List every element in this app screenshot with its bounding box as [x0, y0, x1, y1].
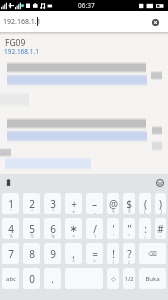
staticText: ³ — [52, 208, 54, 214]
staticText: > — [93, 258, 96, 264]
button[interactable]: ! — [107, 243, 119, 264]
button[interactable]: Clear — [148, 15, 162, 29]
staticText: “ — [128, 233, 130, 239]
staticText: $ — [126, 197, 132, 211]
button[interactable]: ⌫ — [139, 243, 166, 264]
staticText: Buka — [145, 275, 160, 283]
staticText: ; — [144, 233, 146, 239]
staticText: 8 — [29, 247, 35, 261]
staticText: ¹ — [10, 208, 12, 214]
staticText: ) — [159, 197, 162, 211]
button[interactable]: 3 — [44, 193, 61, 214]
button[interactable]: $ — [123, 193, 135, 214]
staticText: @ — [109, 197, 118, 211]
staticText: abc — [6, 275, 16, 283]
button[interactable]: : — [139, 218, 151, 239]
button[interactable]: 5 — [23, 218, 40, 239]
staticText: _ — [94, 208, 96, 214]
staticText: ¡ — [112, 258, 114, 264]
button[interactable]: " — [123, 218, 135, 239]
button[interactable]: ∗ — [65, 218, 82, 239]
staticText: 06:37 — [78, 1, 95, 10]
staticText: ¿ — [128, 258, 130, 264]
staticText: / — [93, 222, 97, 236]
staticText: ² — [31, 208, 33, 214]
staticText: ‘ — [113, 233, 114, 239]
staticText: ! — [112, 247, 115, 261]
staticText: 9 — [50, 247, 56, 261]
staticText: 1 — [8, 197, 14, 211]
staticText: ? — [127, 247, 132, 261]
button[interactable]: – — [86, 193, 103, 214]
staticText: : — [144, 222, 147, 236]
staticText: ⌫ — [148, 250, 157, 257]
button[interactable]: ◇ — [107, 268, 119, 289]
staticText: 3 — [50, 197, 56, 211]
staticText: × — [72, 233, 75, 239]
staticText: \ — [94, 233, 96, 239]
staticText: < — [72, 258, 75, 264]
staticText: 4 — [8, 222, 14, 236]
staticText: 5 — [29, 222, 35, 236]
staticText: § — [112, 208, 115, 214]
staticText: . — [51, 272, 54, 286]
button[interactable]: . — [44, 268, 61, 289]
button[interactable]: 2 — [23, 193, 40, 214]
button[interactable]: 0 — [23, 268, 40, 289]
staticText: ¾ — [51, 233, 55, 239]
button[interactable]: @ — [107, 193, 119, 214]
staticText: , — [72, 247, 75, 261]
button[interactable]: 1 — [2, 193, 19, 214]
button[interactable]: abc — [2, 268, 19, 289]
staticText: 192.168.1.1 — [4, 47, 39, 56]
staticText: 6 — [50, 222, 56, 236]
staticText: 192.168.1.1 — [3, 17, 41, 27]
button[interactable]: , — [65, 243, 82, 264]
button[interactable]: 6 — [44, 218, 61, 239]
button[interactable]: 9 — [44, 243, 61, 264]
staticText: 1/2 — [124, 275, 134, 283]
staticText: ] — [160, 208, 162, 214]
button[interactable]: Emoji — [151, 174, 168, 191]
staticText: ' — [112, 222, 115, 236]
staticText: 2 — [29, 197, 35, 211]
button[interactable]: 8 — [23, 243, 40, 264]
staticText: # — [157, 222, 164, 236]
button[interactable]: Clipboard — [0, 174, 17, 191]
staticText: ¼ — [9, 233, 13, 239]
button[interactable]: # — [155, 218, 166, 239]
staticText: ∗ — [69, 223, 78, 235]
staticText: 0 — [29, 272, 35, 286]
staticText: – — [92, 197, 97, 211]
staticText: ± — [72, 208, 75, 214]
button[interactable]: Buka — [139, 268, 166, 289]
staticText: 7 — [8, 247, 14, 261]
button[interactable]: ) — [155, 193, 166, 214]
button[interactable]: 7 — [2, 243, 19, 264]
staticText: + — [71, 197, 77, 211]
staticText: ~ — [159, 233, 162, 239]
button[interactable]: = — [86, 243, 103, 264]
staticText: FG09 — [5, 37, 26, 49]
button[interactable]: ' — [107, 218, 119, 239]
staticText: € — [128, 208, 131, 214]
staticText: [ — [144, 208, 146, 214]
staticText: ◇ — [111, 275, 116, 282]
button[interactable]: + — [65, 193, 82, 214]
button[interactable]: ? — [123, 243, 135, 264]
button[interactable]: ( — [139, 193, 151, 214]
staticText: ½ — [30, 233, 34, 239]
button[interactable]: 4 — [2, 218, 19, 239]
staticText: " — [127, 222, 132, 236]
staticText: = — [92, 247, 98, 261]
staticText: ( — [144, 197, 147, 211]
button[interactable]: 1/2 — [123, 268, 135, 289]
button[interactable]: / — [86, 218, 103, 239]
